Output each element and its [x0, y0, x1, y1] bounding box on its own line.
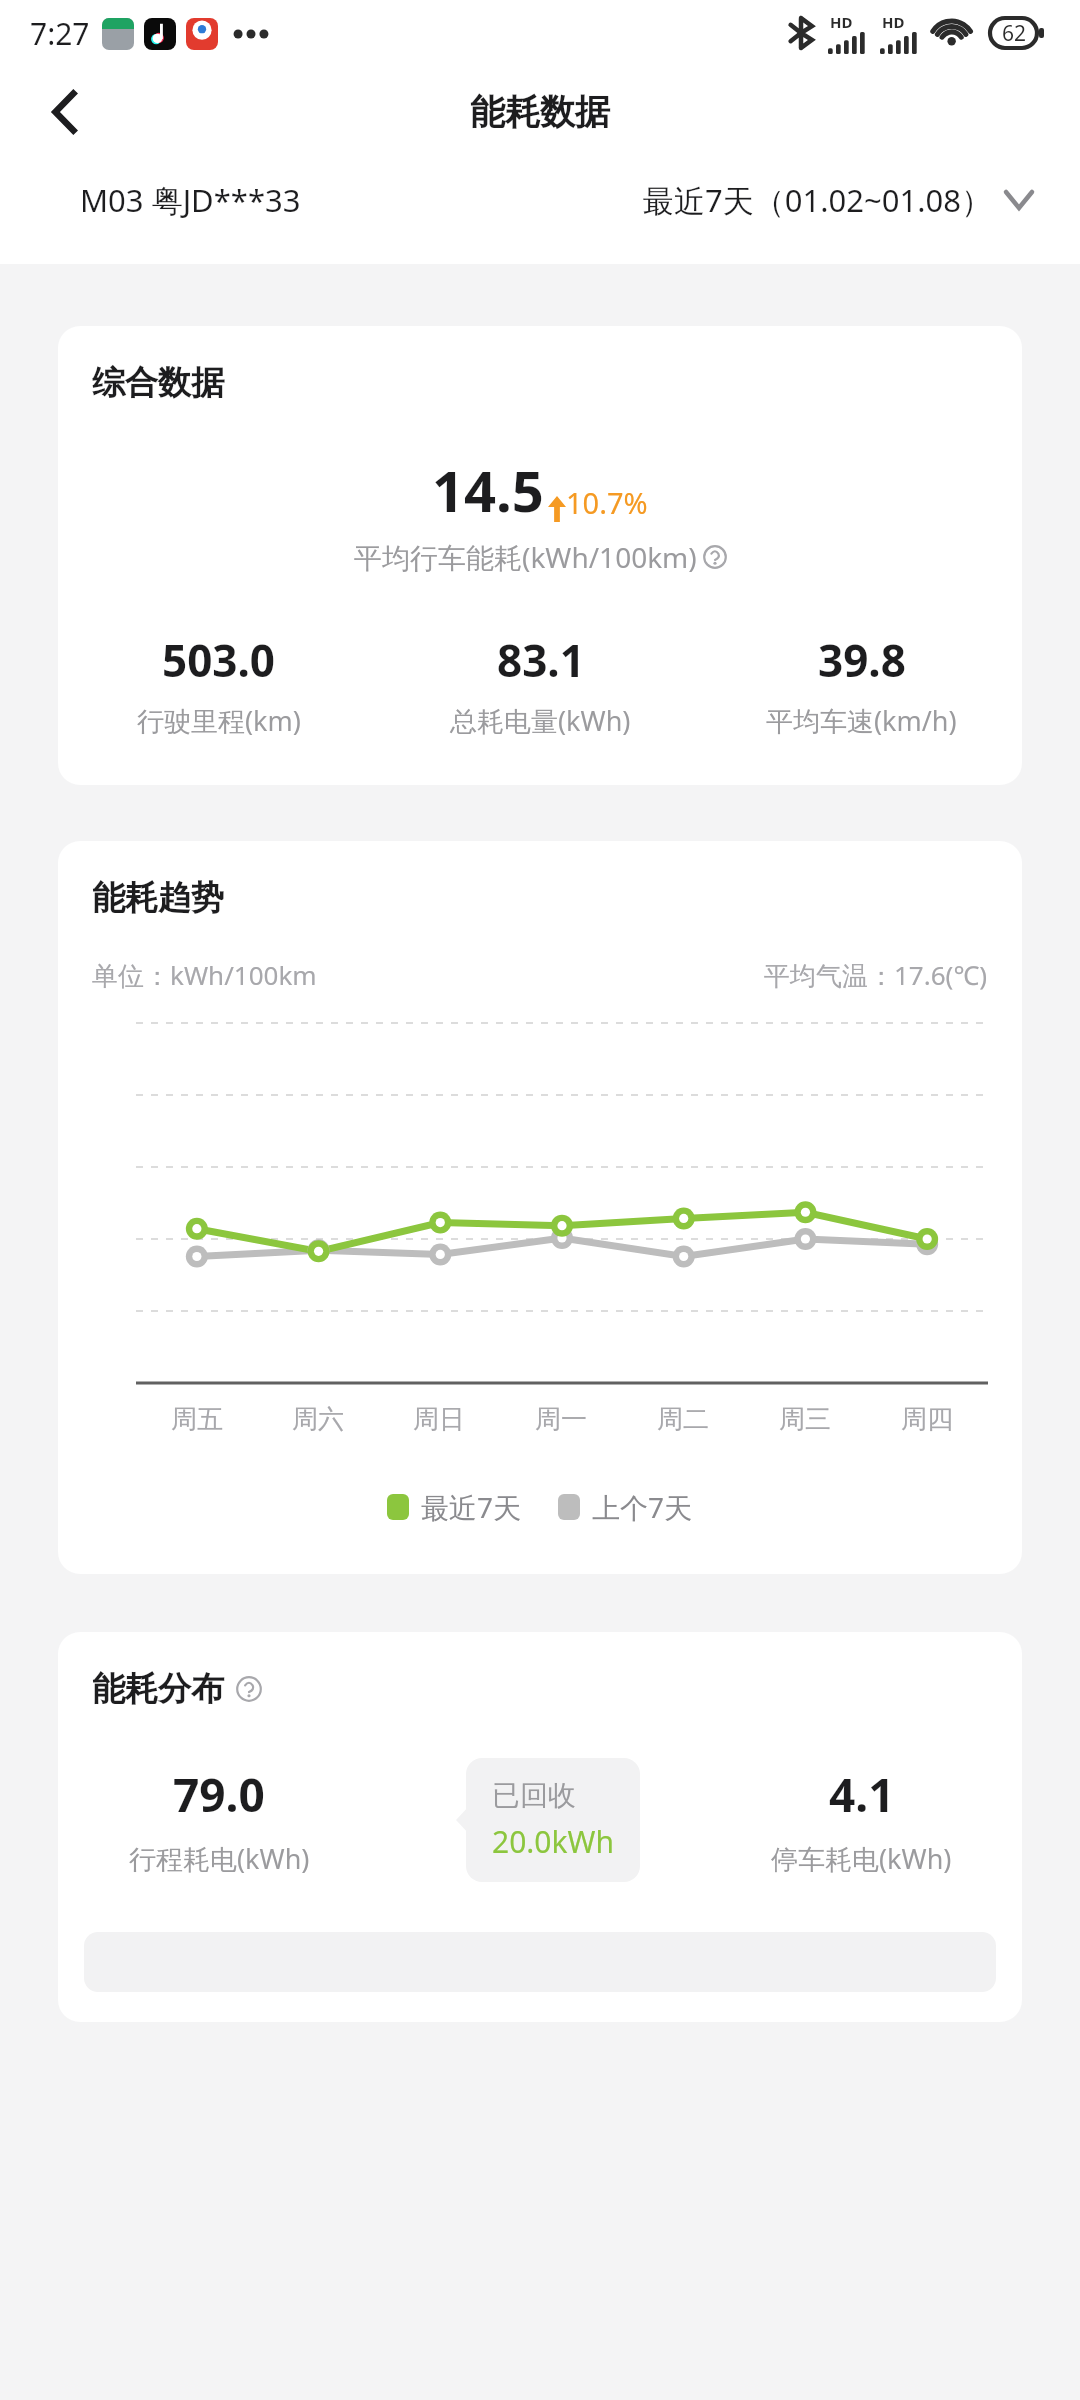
staticText: 行驶里程(km): [137, 702, 301, 739]
staticText: 停车耗电(kWh): [771, 1840, 952, 1877]
staticText: 单位：kWh/100km: [92, 957, 317, 993]
button[interactable]: M03 粤JD***33: [80, 179, 301, 221]
staticText: 能耗趋势: [92, 877, 224, 919]
button[interactable]: 最近7天（01.02~01.08）: [643, 179, 1032, 221]
staticText: 79.0: [173, 1763, 265, 1826]
staticText: 总耗电量(kWh): [450, 702, 631, 739]
button[interactable]: 上个7天: [558, 1488, 693, 1526]
staticText: 39.8: [818, 630, 906, 690]
staticText: 周二: [657, 1403, 709, 1436]
staticText: 平均行车能耗(kWh/100km): [354, 538, 697, 576]
staticText: 最近7天（01.02~01.08）: [643, 179, 992, 221]
staticText: HD: [830, 12, 853, 32]
staticText: 能耗数据: [470, 90, 610, 134]
staticText: 周五: [171, 1403, 223, 1436]
staticText: 上个7天: [592, 1488, 693, 1526]
staticText: 周四: [901, 1403, 953, 1436]
staticText: 14.5: [432, 452, 544, 528]
staticText: 503.0: [162, 630, 276, 690]
staticText: 周六: [292, 1403, 344, 1436]
staticText: 综合数据: [92, 362, 224, 404]
staticText: HD: [882, 12, 905, 32]
staticText: 能耗分布: [92, 1668, 224, 1710]
staticText: 10.7%: [566, 483, 648, 522]
staticText: 83.1: [497, 630, 585, 690]
button[interactable]: 最近7天: [387, 1488, 522, 1526]
staticText: 7:27: [30, 13, 90, 54]
staticText: 20.0kWh: [492, 1821, 614, 1862]
staticText: 4.1: [829, 1763, 895, 1826]
staticText: 62: [1002, 19, 1027, 48]
staticText: 平均车速(km/h): [766, 702, 957, 739]
staticText: 平均气温：17.6(℃): [764, 957, 988, 993]
staticText: 已回收: [492, 1778, 576, 1813]
staticText: 周日: [413, 1403, 465, 1436]
staticText: 最近7天: [421, 1488, 522, 1526]
staticText: M03 粤JD***33: [80, 179, 301, 221]
button[interactable]: Back: [34, 81, 96, 143]
staticText: 周三: [779, 1403, 831, 1436]
staticText: 周一: [535, 1403, 587, 1436]
staticText: 行程耗电(kWh): [129, 1840, 310, 1877]
